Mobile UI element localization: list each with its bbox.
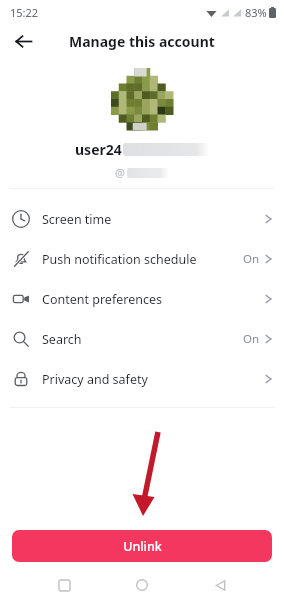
staticText: 15:22: [10, 5, 39, 20]
staticText: Manage this account: [69, 32, 215, 51]
staticText: Privacy and safety: [42, 371, 148, 388]
button[interactable]: Unlink: [12, 530, 272, 562]
button[interactable]: Back: [206, 571, 234, 599]
button[interactable]: Home: [128, 571, 156, 599]
button[interactable]: Content preferences: [0, 279, 284, 319]
staticText: Content preferences: [42, 291, 162, 308]
staticText: Search: [42, 331, 82, 348]
button[interactable]: Search: [0, 319, 284, 359]
staticText: Push notification schedule: [42, 251, 197, 268]
staticText: On: [243, 251, 260, 267]
staticText: user24: [75, 140, 122, 159]
button[interactable]: Push notification schedule: [0, 239, 284, 279]
staticText: Unlink: [123, 538, 162, 555]
button[interactable]: Screen time: [0, 199, 284, 239]
button[interactable]: Privacy and safety: [0, 359, 284, 399]
staticText: Screen time: [42, 211, 112, 228]
staticText: 83%: [245, 5, 267, 20]
button[interactable]: Recents: [50, 571, 78, 599]
staticText: On: [243, 331, 260, 347]
staticText: @: [115, 165, 125, 180]
button[interactable]: Back: [10, 28, 36, 54]
